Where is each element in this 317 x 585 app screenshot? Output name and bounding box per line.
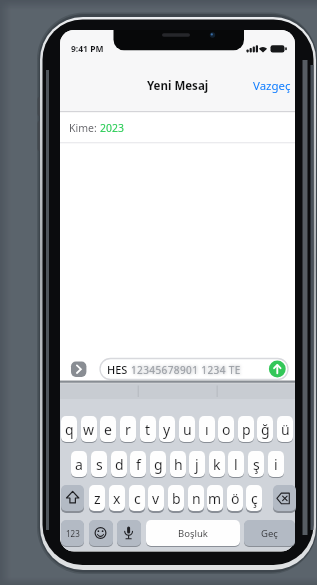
button[interactable]: e: [100, 416, 116, 442]
staticText: 12345678901 1234 TE: [131, 363, 241, 377]
button[interactable]: ö: [227, 485, 243, 511]
staticText: Kime:: [69, 121, 100, 135]
button[interactable]: r: [120, 416, 136, 442]
staticText: ç: [251, 489, 258, 508]
button[interactable]: ı: [199, 416, 215, 442]
staticText: c: [134, 489, 141, 508]
staticText: p: [242, 420, 251, 439]
button[interactable]: z: [89, 485, 105, 511]
button[interactable]: [71, 362, 86, 377]
button[interactable]: w: [81, 416, 97, 442]
button[interactable]: [117, 520, 141, 546]
button[interactable]: HES: [107, 359, 167, 380]
staticText: m: [208, 489, 222, 508]
button[interactable]: k: [209, 451, 225, 477]
button[interactable]: t: [140, 416, 156, 442]
staticText: y: [163, 420, 171, 439]
staticText: t: [145, 420, 151, 439]
button[interactable]: j: [189, 451, 205, 477]
staticText: j: [195, 455, 199, 474]
staticText: o: [222, 420, 231, 439]
button[interactable]: [89, 520, 113, 546]
button[interactable]: ş: [248, 451, 264, 477]
staticText: Boşluk: [178, 527, 208, 540]
staticText: l: [234, 455, 238, 474]
staticText: g: [154, 455, 163, 474]
staticText: u: [183, 420, 192, 439]
button[interactable]: Boşluk: [146, 520, 240, 546]
staticText: ı: [205, 420, 209, 439]
staticText: b: [172, 489, 181, 508]
staticText: HES: [107, 362, 128, 377]
button[interactable]: v: [148, 485, 164, 511]
button[interactable]: x: [109, 485, 125, 511]
button[interactable]: i: [268, 451, 284, 477]
button[interactable]: s: [91, 451, 107, 477]
staticText: ğ: [261, 420, 270, 439]
staticText: r: [125, 420, 131, 439]
button[interactable]: q: [61, 416, 77, 442]
staticText: ü: [281, 420, 290, 439]
button[interactable]: p: [238, 416, 254, 442]
button[interactable]: g: [150, 451, 166, 477]
staticText: 2023: [100, 121, 125, 135]
button[interactable]: n: [188, 485, 204, 511]
staticText: i: [274, 455, 278, 474]
button[interactable]: b: [168, 485, 184, 511]
staticText: ö: [231, 489, 240, 508]
button[interactable]: Vazgeç: [230, 78, 291, 94]
button[interactable]: a: [71, 451, 87, 477]
button[interactable]: [61, 485, 84, 511]
button[interactable]: 123: [61, 520, 84, 546]
button[interactable]: y: [159, 416, 175, 442]
staticText: 123: [66, 528, 80, 539]
button[interactable]: o: [218, 416, 234, 442]
staticText: z: [94, 489, 101, 508]
staticText: n: [192, 489, 201, 508]
staticText: f: [136, 455, 141, 474]
button[interactable]: ğ: [257, 416, 273, 442]
staticText: Vazgeç: [253, 78, 291, 94]
staticText: Geç: [261, 527, 278, 540]
staticText: 9:41 PM: [71, 43, 104, 55]
staticText: v: [152, 489, 160, 508]
button[interactable]: h: [170, 451, 186, 477]
staticText: x: [113, 489, 121, 508]
staticText: q: [65, 420, 74, 439]
button[interactable]: l: [228, 451, 244, 477]
staticText: s: [96, 455, 103, 474]
button[interactable]: m: [207, 485, 223, 511]
staticText: Yeni Mesaj: [147, 78, 209, 94]
staticText: ş: [253, 455, 260, 474]
button[interactable]: ç: [246, 485, 262, 511]
button[interactable]: [273, 485, 296, 511]
button[interactable]: [269, 361, 286, 378]
staticText: e: [104, 420, 112, 439]
button[interactable]: d: [111, 451, 127, 477]
button[interactable]: Geç: [244, 520, 295, 546]
button[interactable]: f: [130, 451, 146, 477]
button[interactable]: c: [129, 485, 145, 511]
staticText: w: [83, 420, 95, 439]
button[interactable]: Kime:: [69, 121, 125, 135]
staticText: a: [75, 455, 83, 474]
staticText: h: [174, 455, 183, 474]
staticText: d: [115, 455, 124, 474]
button[interactable]: u: [179, 416, 195, 442]
staticText: k: [213, 455, 221, 474]
button[interactable]: ü: [277, 416, 293, 442]
